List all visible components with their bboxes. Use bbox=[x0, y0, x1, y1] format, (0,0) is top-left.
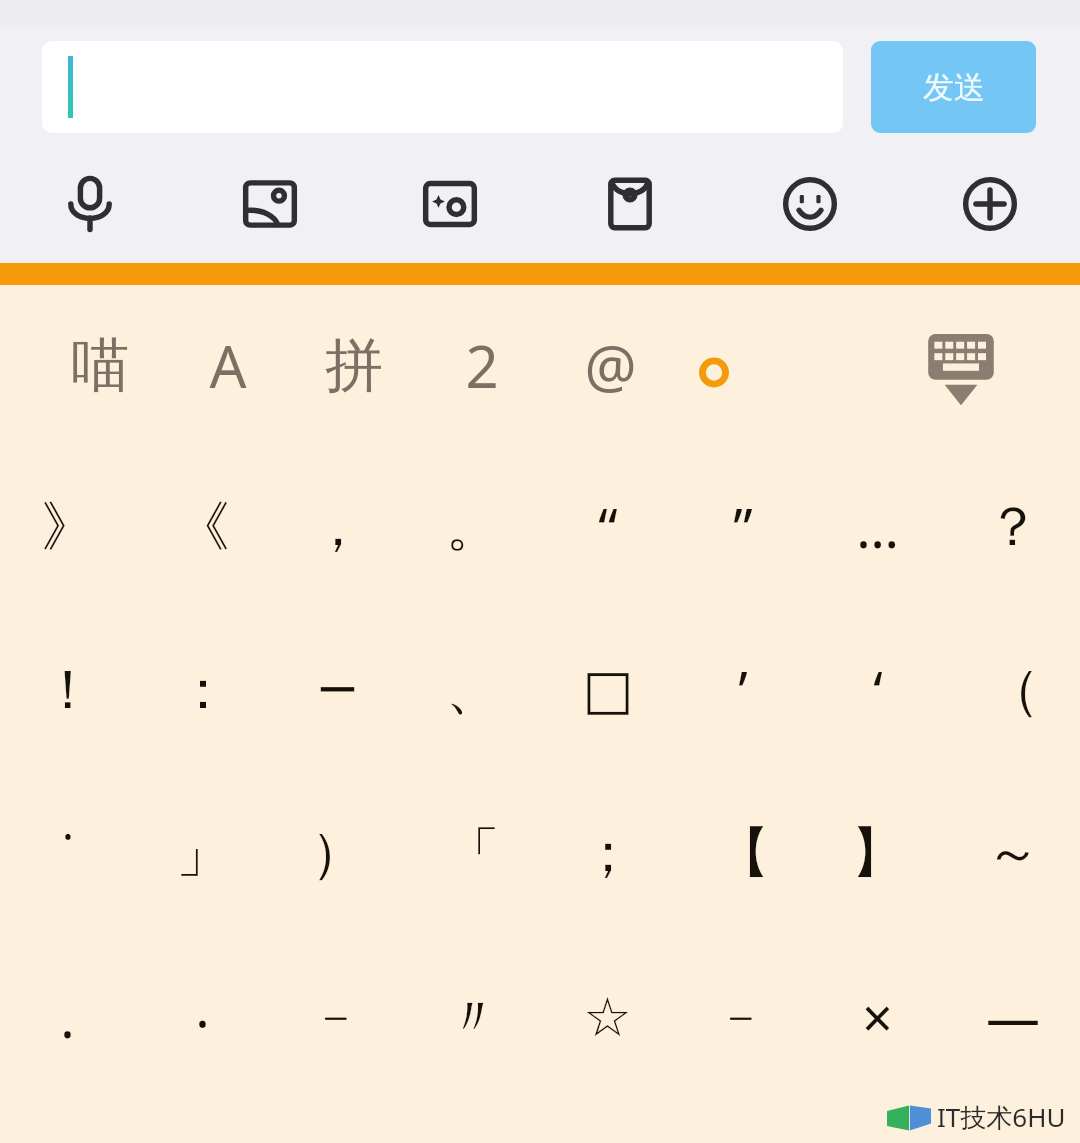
staticText: 【 bbox=[716, 819, 770, 887]
staticText: IT技术6HU bbox=[937, 1099, 1066, 1135]
button[interactable]: @ bbox=[558, 313, 662, 417]
button[interactable]: Punctuation bbox=[662, 313, 766, 417]
button[interactable]: Emoji bbox=[720, 145, 900, 263]
button[interactable]: ‘ bbox=[810, 608, 945, 771]
button[interactable]: 、 bbox=[405, 608, 540, 771]
button[interactable]: — bbox=[945, 935, 1080, 1099]
button[interactable]: 。 bbox=[405, 445, 540, 608]
staticText: @ bbox=[584, 326, 637, 405]
staticText: ‘ bbox=[873, 653, 883, 727]
staticText: ☆ bbox=[583, 986, 632, 1049]
staticText: 《 bbox=[176, 493, 230, 561]
staticText: ； bbox=[581, 819, 635, 887]
staticText: 喵 bbox=[71, 329, 129, 402]
button[interactable]: 《 bbox=[135, 445, 270, 608]
staticText: × bbox=[862, 980, 893, 1054]
button[interactable]: ： bbox=[135, 608, 270, 771]
button[interactable]: Voice input bbox=[0, 145, 180, 263]
staticText: 「 bbox=[446, 819, 500, 887]
button[interactable]: 「 bbox=[405, 771, 540, 935]
staticText: 2 bbox=[465, 326, 499, 405]
button[interactable]: Photo bbox=[180, 145, 360, 263]
button[interactable]: ？ bbox=[945, 445, 1080, 608]
button[interactable]: 》 bbox=[0, 445, 135, 608]
button[interactable]: 〃 bbox=[405, 935, 540, 1099]
button[interactable]: … bbox=[810, 445, 945, 608]
staticText: ？ bbox=[986, 493, 1040, 561]
button[interactable]: Sticker bbox=[360, 145, 540, 263]
staticText: “ bbox=[598, 490, 618, 564]
button[interactable]: ‧ bbox=[135, 935, 270, 1099]
staticText: 拼 bbox=[325, 329, 383, 402]
staticText: 】 bbox=[851, 819, 905, 887]
button[interactable]: ） bbox=[270, 771, 405, 935]
staticText: ， bbox=[311, 493, 365, 561]
button[interactable]: 【 bbox=[675, 771, 810, 935]
staticText: ﹣ bbox=[716, 983, 770, 1051]
staticText: ‧ bbox=[195, 980, 210, 1054]
staticText: ﹣ bbox=[311, 983, 365, 1051]
button[interactable]: ﹣ bbox=[270, 935, 405, 1099]
staticText: ” bbox=[733, 490, 753, 564]
button[interactable]: ˙ bbox=[0, 771, 135, 935]
button[interactable]: 拼 bbox=[302, 313, 406, 417]
staticText: A bbox=[209, 326, 247, 405]
staticText: ） bbox=[311, 819, 365, 887]
button[interactable]: “ bbox=[540, 445, 675, 608]
staticText: ’ bbox=[738, 653, 748, 727]
button[interactable]: 】 bbox=[810, 771, 945, 935]
button[interactable]: ﹣ bbox=[675, 935, 810, 1099]
button[interactable]: ’ bbox=[675, 608, 810, 771]
staticText: 》 bbox=[41, 493, 95, 561]
staticText: — bbox=[986, 980, 1040, 1054]
button[interactable]: ” bbox=[675, 445, 810, 608]
staticText: □ bbox=[582, 658, 634, 721]
button[interactable]: . bbox=[0, 935, 135, 1099]
button[interactable]: 」 bbox=[135, 771, 270, 935]
button[interactable]: ～ bbox=[945, 771, 1080, 935]
button[interactable]: ； bbox=[540, 771, 675, 935]
button[interactable]: 喵 bbox=[48, 313, 152, 417]
staticText: . bbox=[60, 980, 75, 1054]
button[interactable]: ☆ bbox=[540, 935, 675, 1099]
button[interactable]: ！ bbox=[0, 608, 135, 771]
staticText: ─ bbox=[321, 658, 354, 721]
staticText: … bbox=[856, 490, 899, 564]
staticText: 。 bbox=[446, 493, 500, 561]
staticText: ˙ bbox=[63, 816, 73, 890]
button[interactable]: ─ bbox=[270, 608, 405, 771]
staticText: ！ bbox=[41, 656, 95, 724]
staticText: ： bbox=[176, 656, 230, 724]
staticText: 发送 bbox=[923, 68, 985, 107]
button[interactable]: × bbox=[810, 935, 945, 1099]
button[interactable]: 发送 bbox=[871, 41, 1036, 133]
staticText: （ bbox=[986, 656, 1040, 724]
button[interactable]: ， bbox=[270, 445, 405, 608]
button[interactable]: Hide keyboard bbox=[908, 317, 1014, 423]
button[interactable] bbox=[42, 41, 843, 133]
button[interactable]: A bbox=[176, 313, 280, 417]
staticText: 」 bbox=[176, 819, 230, 887]
button[interactable]: □ bbox=[540, 608, 675, 771]
button[interactable]: Red packet bbox=[540, 145, 720, 263]
button[interactable]: （ bbox=[945, 608, 1080, 771]
staticText: 、 bbox=[446, 656, 500, 724]
button[interactable]: 2 bbox=[430, 313, 534, 417]
staticText: ～ bbox=[986, 819, 1040, 887]
staticText: 〃 bbox=[446, 983, 500, 1051]
button[interactable]: More bbox=[900, 145, 1080, 263]
